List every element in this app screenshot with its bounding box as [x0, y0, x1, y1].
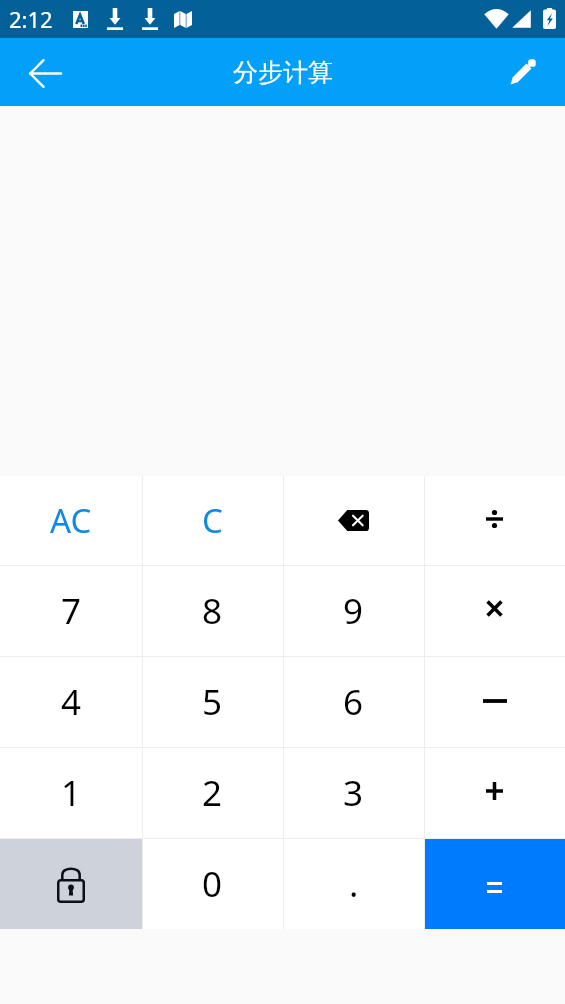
- button[interactable]: Divide: [424, 476, 565, 565]
- staticText: 分步计算: [233, 57, 333, 88]
- button[interactable]: Back: [17, 45, 73, 101]
- button[interactable]: Plus: [424, 748, 565, 838]
- staticText: 8: [202, 587, 223, 635]
- button[interactable]: Minus: [424, 657, 565, 747]
- button[interactable]: AC: [0, 476, 142, 565]
- staticText: C: [202, 498, 223, 543]
- staticText: 1: [61, 769, 82, 817]
- staticText: 2:12: [9, 4, 53, 34]
- button[interactable]: 4: [0, 657, 142, 747]
- button[interactable]: 3: [283, 748, 424, 838]
- staticText: 9: [343, 587, 364, 635]
- staticText: 4: [61, 678, 82, 726]
- button[interactable]: .: [283, 839, 424, 929]
- button[interactable]: Lock: [0, 839, 142, 929]
- staticText: 2: [202, 769, 223, 817]
- button[interactable]: 6: [283, 657, 424, 747]
- button[interactable]: Backspace: [283, 476, 424, 565]
- button[interactable]: 5: [142, 657, 283, 747]
- staticText: 0: [202, 860, 223, 908]
- button[interactable]: 2: [142, 748, 283, 838]
- button[interactable]: 9: [283, 566, 424, 656]
- staticText: AC: [50, 498, 92, 543]
- button[interactable]: 7: [0, 566, 142, 656]
- button[interactable]: Equals: [424, 839, 565, 929]
- staticText: 5: [202, 678, 223, 726]
- staticText: 7: [61, 587, 82, 635]
- button[interactable]: 8: [142, 566, 283, 656]
- staticText: 6: [343, 678, 364, 726]
- button[interactable]: 0: [142, 839, 283, 929]
- staticText: 3: [343, 769, 364, 817]
- button[interactable]: Multiply: [424, 566, 565, 656]
- staticText: .: [349, 860, 359, 908]
- button[interactable]: Edit: [495, 44, 551, 100]
- button[interactable]: C: [142, 476, 283, 565]
- button[interactable]: 1: [0, 748, 142, 838]
